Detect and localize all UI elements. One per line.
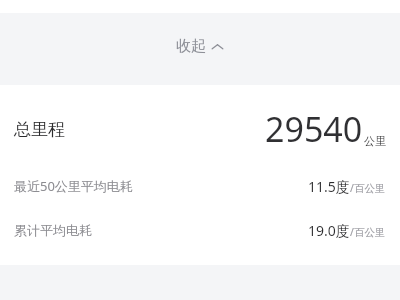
staticText: 总里程 xyxy=(14,119,65,140)
staticText: 公里 xyxy=(364,134,386,148)
staticText: 累计平均电耗 xyxy=(14,222,92,238)
staticText: /百公里 xyxy=(350,181,386,195)
staticText: /百公里 xyxy=(350,225,386,239)
button[interactable]: 收起 xyxy=(166,34,234,59)
button[interactable]: 最近50公里平均电耗 xyxy=(0,175,400,197)
staticText: 最近50公里平均电耗 xyxy=(14,177,133,195)
staticText: 11.5度 xyxy=(308,177,350,196)
staticText: 收起 xyxy=(176,37,206,56)
staticText: 19.0度 xyxy=(308,221,350,240)
button[interactable]: 累计平均电耗 xyxy=(0,219,400,241)
button[interactable]: 总里程 xyxy=(0,105,400,153)
staticText: 29540 xyxy=(265,106,363,152)
